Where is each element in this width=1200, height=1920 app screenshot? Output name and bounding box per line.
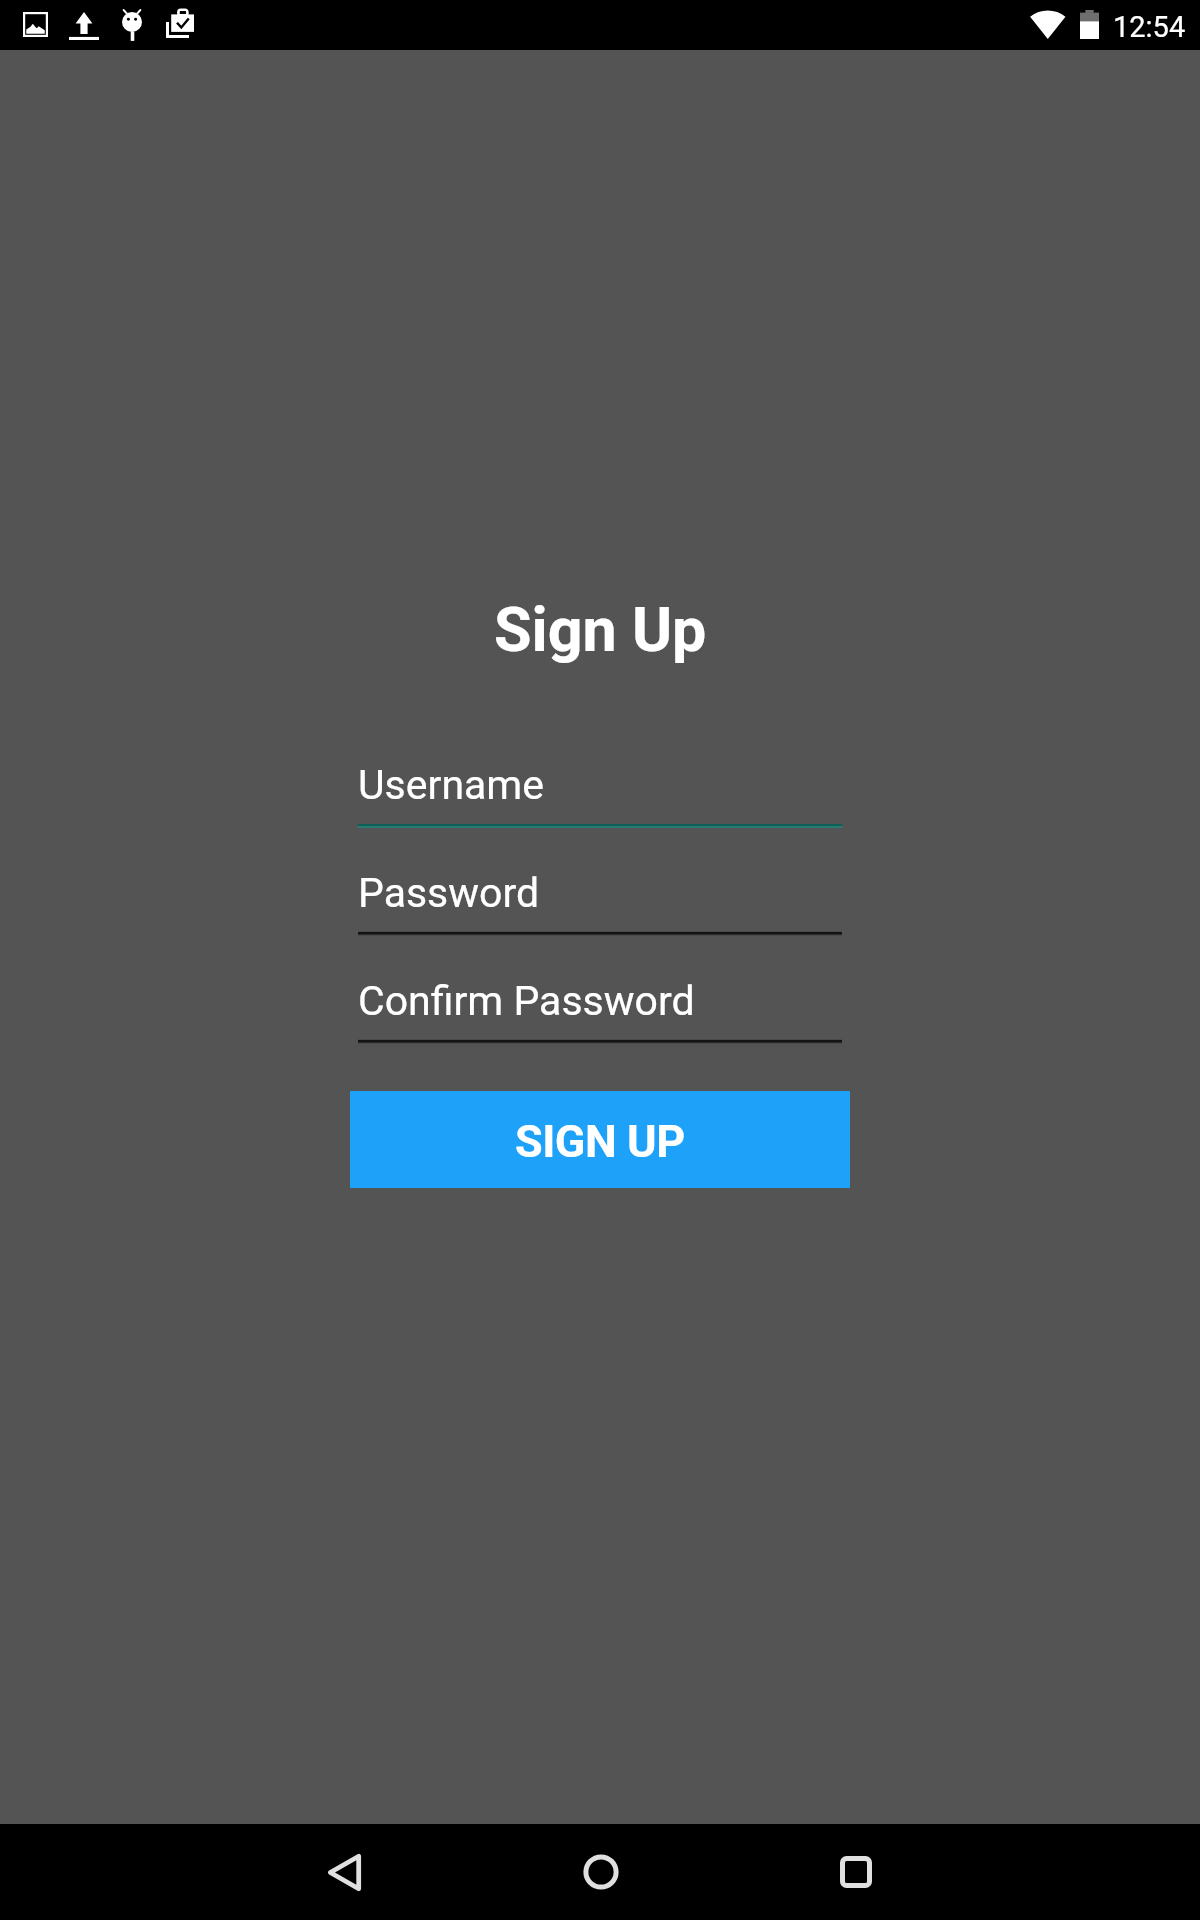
button[interactable]: Back: [294, 1824, 394, 1920]
staticText: Confirm Password: [358, 977, 695, 1025]
staticText: Sign Up: [494, 594, 707, 665]
button[interactable]: Confirm Password: [358, 963, 842, 1044]
staticText: SIGN UP: [515, 1115, 685, 1168]
staticText: Username: [358, 761, 545, 809]
button[interactable]: Username: [358, 747, 842, 828]
staticText: 12:54: [1113, 10, 1186, 44]
button[interactable]: SIGN UP: [350, 1091, 850, 1188]
button[interactable]: Home: [551, 1824, 651, 1920]
button[interactable]: Recent apps: [806, 1824, 906, 1920]
button[interactable]: Password: [358, 855, 842, 936]
staticText: Password: [358, 869, 540, 917]
